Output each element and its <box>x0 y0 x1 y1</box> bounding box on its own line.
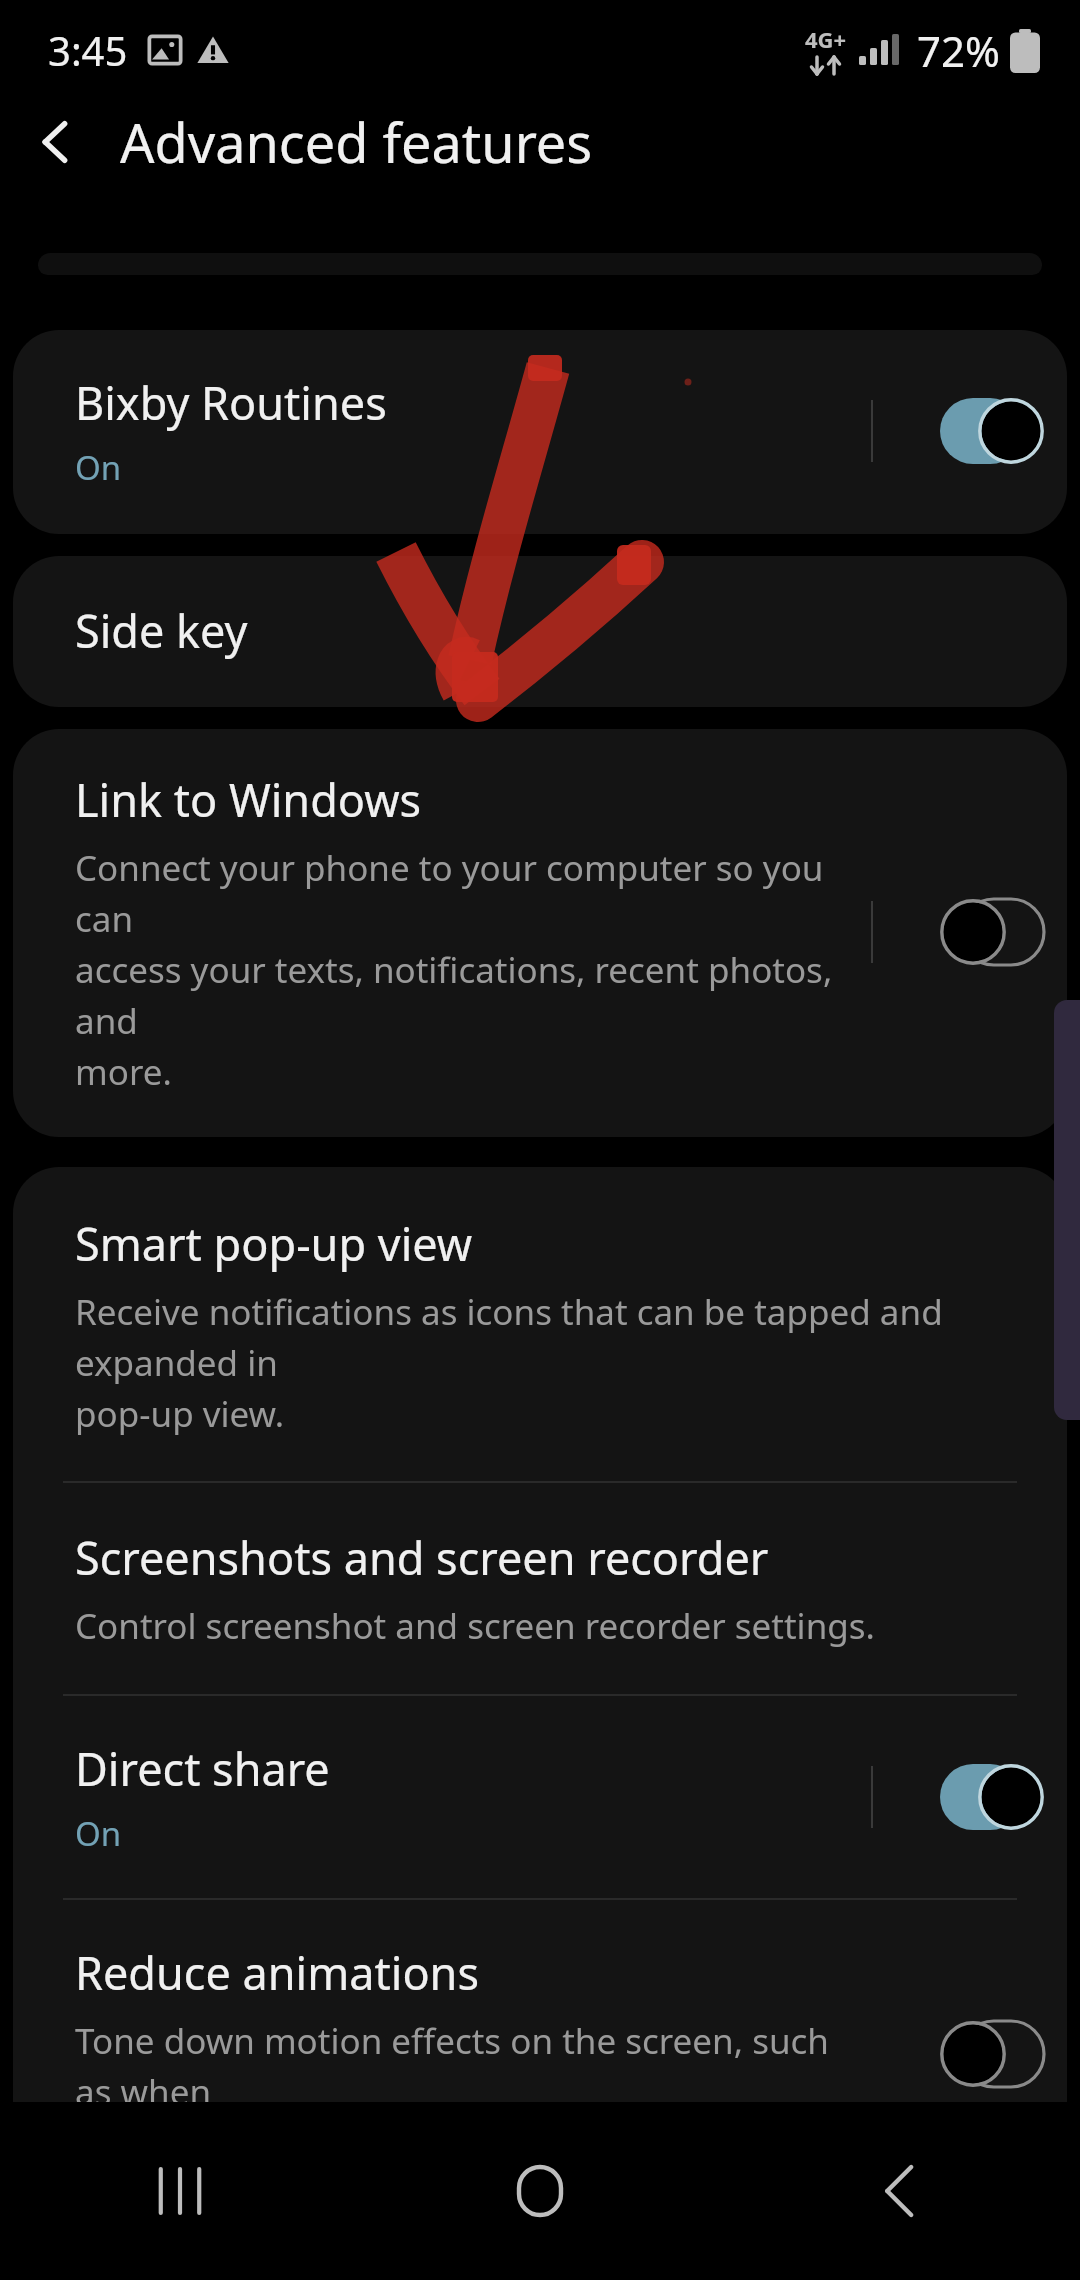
staticText: 3:45 <box>48 23 128 77</box>
staticText: Reduce animations <box>75 1942 479 2003</box>
button[interactable]: Recent apps <box>0 2102 360 2280</box>
button[interactable]: Direct share <box>13 1696 1067 1898</box>
staticText: Advanced features <box>120 105 593 179</box>
staticText: On <box>75 445 122 490</box>
button[interactable]: Bixby Routines, on <box>917 376 1067 486</box>
staticText: 4G+ <box>805 24 847 54</box>
button[interactable]: Navigate up <box>0 86 112 198</box>
staticText: 72% <box>917 22 1000 79</box>
button[interactable]: Back <box>720 2102 1080 2280</box>
button[interactable]: Smart pop-up view <box>13 1167 1067 1481</box>
staticText: Tone down motion effects on the screen, … <box>75 2017 851 2166</box>
staticText: Connect your phone to your computer so y… <box>75 844 851 1095</box>
staticText: Control screenshot and screen recorder s… <box>75 1602 875 1650</box>
staticText: Bixby Routines <box>75 372 387 433</box>
staticText: On <box>75 1811 122 1856</box>
staticText: Side key <box>75 600 248 661</box>
staticText: Direct share <box>75 1738 330 1799</box>
button[interactable]: Link to Windows, off <box>917 877 1067 987</box>
button[interactable]: Side key <box>13 556 1067 707</box>
button[interactable]: Screenshots and screen recorder <box>13 1483 1067 1694</box>
staticText: Smart pop-up view <box>75 1213 473 1274</box>
button[interactable]: Reduce animations, off <box>917 1999 1067 2109</box>
button[interactable]: Bixby Routines <box>13 330 1067 534</box>
button[interactable]: Link to Windows <box>13 729 1067 1137</box>
staticText: Link to Windows <box>75 769 422 830</box>
button[interactable]: Home <box>360 2102 720 2280</box>
staticText: Receive notifications as icons that can … <box>75 1288 1011 1437</box>
button[interactable]: Reduce animations <box>13 1900 1067 2214</box>
button[interactable]: Direct share, on <box>917 1742 1067 1852</box>
staticText: Screenshots and screen recorder <box>75 1527 769 1588</box>
